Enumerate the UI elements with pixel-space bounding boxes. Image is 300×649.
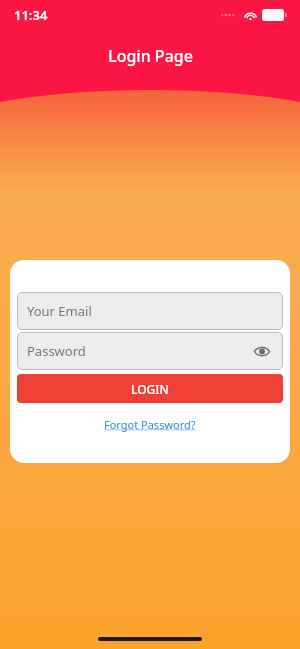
button[interactable]: LOGIN xyxy=(17,374,283,403)
button[interactable]: Forgot Password? xyxy=(98,415,202,434)
staticText: LOGIN xyxy=(131,381,169,397)
staticText: 11:34 xyxy=(14,6,48,24)
button[interactable]: Show password xyxy=(251,340,273,362)
staticText: Password xyxy=(27,342,86,360)
staticText: Forgot Password? xyxy=(104,417,196,432)
staticText: Your Email xyxy=(27,302,92,320)
button[interactable]: Password xyxy=(17,332,283,370)
staticText: Login Page xyxy=(108,45,193,67)
button[interactable]: Your Email xyxy=(17,292,283,330)
